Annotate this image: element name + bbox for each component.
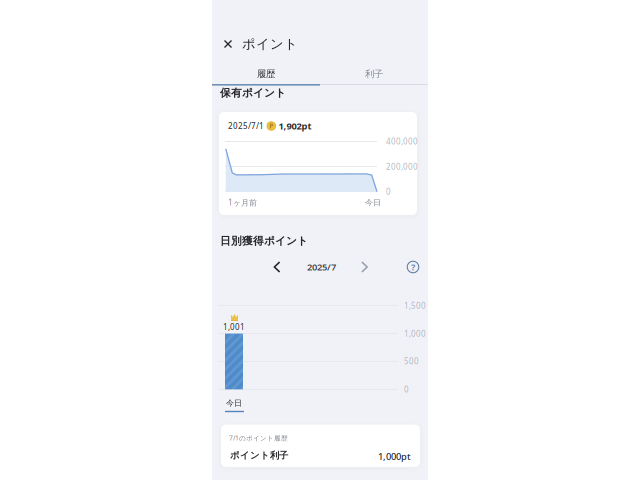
staticText: 0: [386, 186, 391, 197]
staticText: P: [269, 122, 273, 130]
staticText: 1,500: [404, 300, 426, 311]
staticText: 今日: [365, 198, 381, 207]
staticText: 1,001: [223, 322, 245, 332]
staticText: 2025/7/1: [228, 121, 264, 131]
staticText: 0: [404, 384, 409, 395]
button[interactable]: Help: [403, 257, 423, 277]
staticText: 1,000: [404, 328, 426, 339]
staticText: 利子: [365, 68, 383, 80]
staticText: 履歴: [257, 68, 275, 80]
button[interactable]: 履歴: [212, 62, 320, 86]
staticText: ?: [411, 261, 415, 273]
staticText: 200,000: [386, 161, 418, 172]
staticText: 400,000: [386, 136, 418, 147]
staticText: 1ヶ月前: [228, 197, 257, 208]
staticText: 1,902pt: [279, 120, 312, 132]
button[interactable]: Previous month: [267, 257, 287, 277]
staticText: 1,000pt: [378, 450, 411, 463]
button[interactable]: Close: [217, 33, 239, 55]
staticText: 日別獲得ポイント: [220, 234, 308, 247]
button[interactable]: 利子: [320, 62, 428, 86]
staticText: 保有ポイント: [220, 86, 286, 99]
staticText: 2025/7: [307, 261, 336, 273]
staticText: 今日: [226, 398, 242, 408]
staticText: 7/1のポイント履歴: [229, 434, 288, 442]
button[interactable]: Next month: [354, 257, 374, 277]
staticText: ポイント: [242, 36, 298, 52]
staticText: 500: [404, 356, 419, 366]
staticText: ポイント利子: [230, 450, 288, 461]
